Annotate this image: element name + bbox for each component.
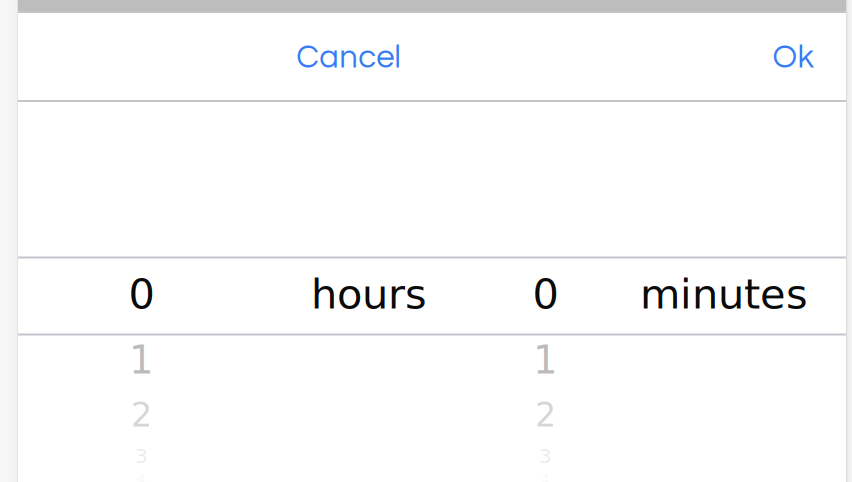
staticText: 1	[129, 337, 154, 382]
staticText: hours	[311, 270, 427, 318]
staticText: 2	[535, 396, 556, 434]
staticText: Cancel	[296, 41, 401, 74]
staticText: 0	[128, 270, 154, 318]
staticText: 1	[533, 337, 558, 382]
button[interactable]: Cancel	[247, 13, 451, 101]
staticText: Ok	[772, 41, 813, 74]
staticText: 3	[135, 444, 148, 468]
staticText: 4	[541, 472, 549, 482]
button[interactable]: Ok	[729, 13, 852, 101]
staticText: 4	[137, 472, 145, 482]
staticText: minutes	[640, 270, 808, 318]
staticText: 3	[539, 444, 552, 468]
staticText: 2	[131, 396, 152, 434]
staticText: 0	[532, 270, 558, 318]
